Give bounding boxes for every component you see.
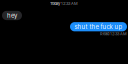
staticText: shut the fuck up (74, 23, 122, 30)
staticText: 12:33 AM (61, 1, 78, 6)
staticText: hey (7, 12, 17, 19)
button[interactable]: shut the fuck up (70, 22, 127, 31)
staticText: Read 12:33 AM (100, 31, 127, 36)
staticText: Today (50, 1, 60, 6)
button[interactable]: hey (2, 11, 22, 20)
